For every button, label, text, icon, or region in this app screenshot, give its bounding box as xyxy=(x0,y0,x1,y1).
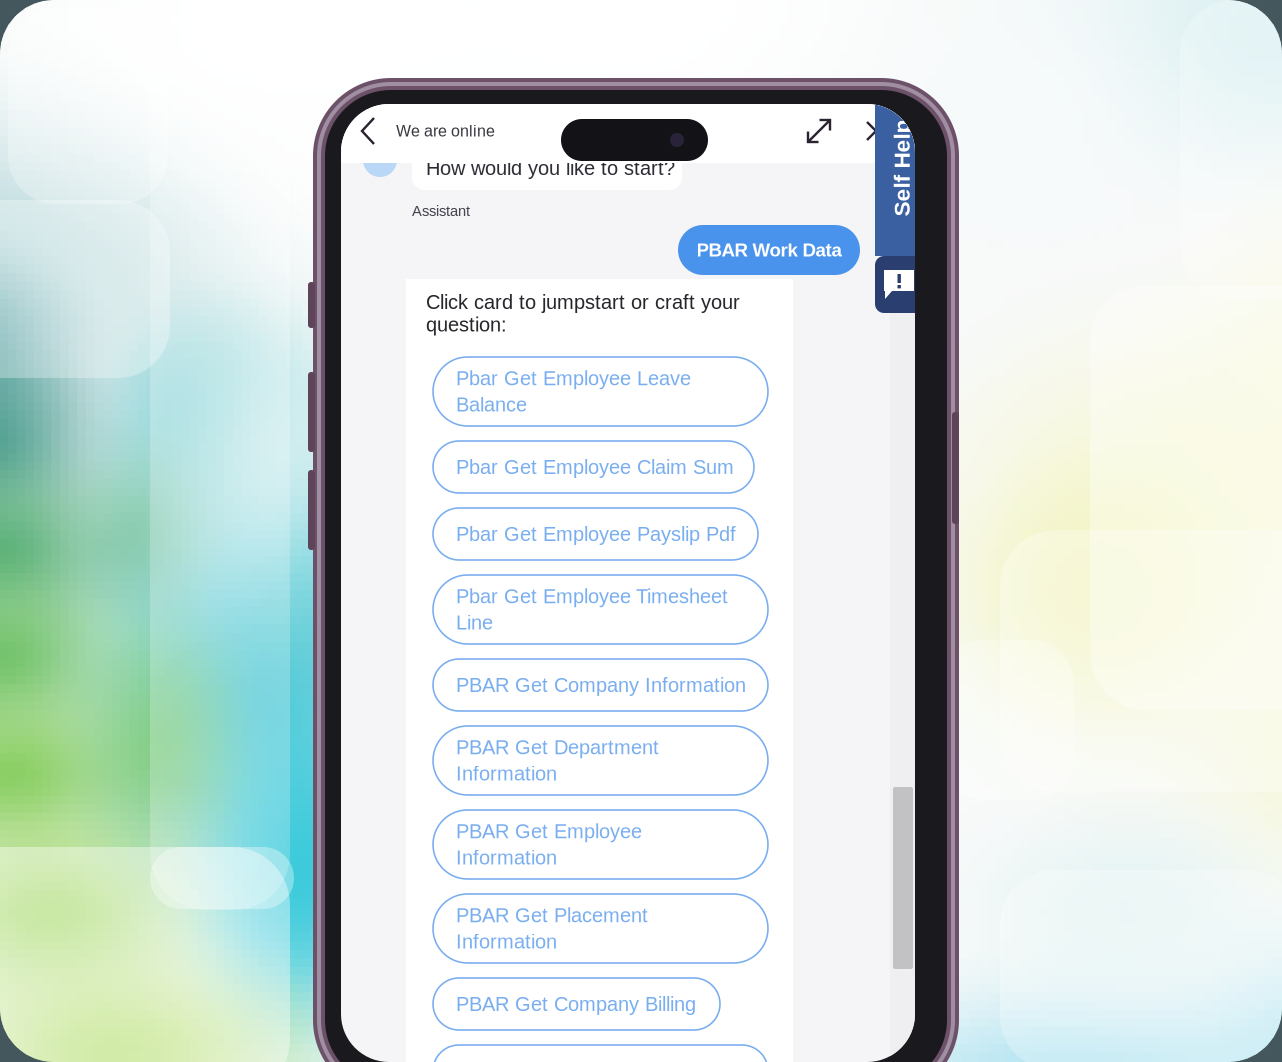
staticText: Pbar Get Employee Payslip Pdf xyxy=(456,523,736,545)
button[interactable]: PBAR Get Employee xyxy=(433,810,768,879)
staticText: We are online xyxy=(396,122,495,140)
button[interactable]: Pbar Get Employee Timesheet xyxy=(433,575,768,644)
button[interactable]: Pbar Get Employee Payslip Pdf xyxy=(433,508,758,560)
staticText: Assistant xyxy=(412,203,470,219)
staticText: How would you like to start? xyxy=(426,157,675,179)
button[interactable]: Expand xyxy=(804,116,834,146)
staticText: Click card to jumpstart or craft your qu… xyxy=(426,291,740,336)
button[interactable]: Self Help xyxy=(875,104,929,256)
staticText: Pbar Get Employee Claim Sum xyxy=(456,456,734,478)
button[interactable]: Back xyxy=(357,114,383,148)
staticText: Balance xyxy=(456,393,527,416)
staticText: PBAR Get Company Information xyxy=(456,674,746,696)
button[interactable]: PBAR Get Company Payroll xyxy=(433,1045,768,1062)
staticText: PBAR Get Placement xyxy=(456,904,648,926)
staticText: PBAR Get Employee xyxy=(456,820,642,842)
staticText: Information xyxy=(456,930,557,953)
button[interactable]: PBAR Get Company Billing xyxy=(433,978,720,1030)
staticText: Self Help xyxy=(853,155,950,181)
staticText: PBAR Work Data xyxy=(696,240,841,260)
staticText: Pbar Get Employee Leave xyxy=(456,367,691,389)
button[interactable]: Pbar Get Employee Claim Sum xyxy=(433,441,754,493)
staticText: Line xyxy=(456,611,493,634)
button[interactable]: Close xyxy=(863,118,889,144)
staticText: Information xyxy=(456,762,557,785)
button[interactable]: Alerts xyxy=(875,256,941,313)
staticText: PBAR Get Company Billing xyxy=(456,993,696,1015)
button[interactable]: PBAR Get Placement xyxy=(433,894,768,963)
staticText: Pbar Get Employee Timesheet xyxy=(456,585,728,607)
button[interactable]: PBAR Get Department xyxy=(433,726,768,795)
button[interactable]: Pbar Get Employee Leave xyxy=(433,357,768,426)
staticText: Information xyxy=(456,846,557,869)
button[interactable]: PBAR Get Company Information xyxy=(433,659,768,711)
staticText: PBAR Get Department xyxy=(456,736,659,758)
